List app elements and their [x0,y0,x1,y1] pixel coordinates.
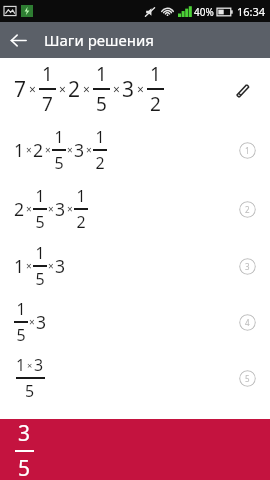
staticText: × [113,81,120,97]
staticText: 5 [96,91,107,117]
staticText: 5 [35,211,45,233]
button[interactable]: Шаг 4 [239,314,256,331]
button[interactable]: Шаг 3 [239,258,256,275]
staticText: 1 [35,185,45,207]
staticText: × [86,143,92,157]
staticText: 2 [14,197,25,221]
staticText: 1 [14,138,25,162]
button[interactable]: 2 [0,180,270,238]
staticText: × [67,143,73,157]
button[interactable]: 3 [0,419,270,480]
button[interactable]: 1 [0,294,270,350]
staticText: × [48,202,54,216]
staticText: 1 [95,126,105,148]
staticText: 5 [54,152,64,174]
staticText: 2 [150,91,161,117]
staticText: 1 [35,242,45,264]
staticText: × [67,202,73,216]
staticText: 40% [194,5,214,19]
staticText: × [26,259,32,273]
button[interactable]: 1 [0,350,270,406]
staticText: 2 [68,75,81,104]
staticText: 7 [14,75,27,104]
staticText: 3 [18,419,31,448]
staticText: 5 [245,373,250,384]
button[interactable]: 1 [0,238,270,294]
staticText: × [29,81,36,97]
staticText: × [29,315,35,329]
staticText: 5 [25,380,35,402]
staticText: × [26,143,32,157]
staticText: 4 [245,317,250,328]
staticText: 3 [74,138,85,162]
staticText: × [27,359,33,372]
staticText: × [59,81,66,97]
staticText: 1 [245,145,250,156]
staticText: 1 [14,254,25,278]
staticText: × [45,143,51,157]
staticText: Шаги решения [44,30,154,50]
staticText: 5 [16,324,26,346]
staticText: 3 [122,75,135,104]
button[interactable]: 7 [0,58,270,120]
button[interactable]: Шаг 1 [239,142,256,159]
staticText: 1 [42,61,53,87]
button[interactable]: Редактировать [228,75,256,103]
staticText: 2 [76,211,86,233]
button[interactable]: Шаг 2 [239,201,256,218]
staticText: 7 [42,91,53,117]
staticText: 3 [55,197,66,221]
button[interactable]: Шаг 5 [239,370,256,387]
button[interactable]: 1 [0,120,270,180]
button[interactable]: Назад [0,22,36,58]
staticText: 1 [54,126,64,148]
staticText: 16:34 [237,4,266,19]
staticText: × [83,81,90,97]
staticText: 1 [76,185,86,207]
staticText: × [137,81,144,97]
staticText: × [48,259,54,273]
staticText: 1 [96,61,107,87]
staticText: 3 [36,310,47,334]
staticText: 2 [245,204,250,215]
staticText: × [26,202,32,216]
staticText: 3 [245,261,250,272]
staticText: 2 [95,152,105,174]
staticText: 5 [35,268,45,290]
staticText: 1 [16,298,26,320]
staticText: 3 [34,354,44,376]
staticText: 1 [150,61,161,87]
staticText: 1 [16,354,26,376]
staticText: 5 [18,454,31,480]
staticText: 2 [33,138,44,162]
staticText: 3 [55,254,66,278]
